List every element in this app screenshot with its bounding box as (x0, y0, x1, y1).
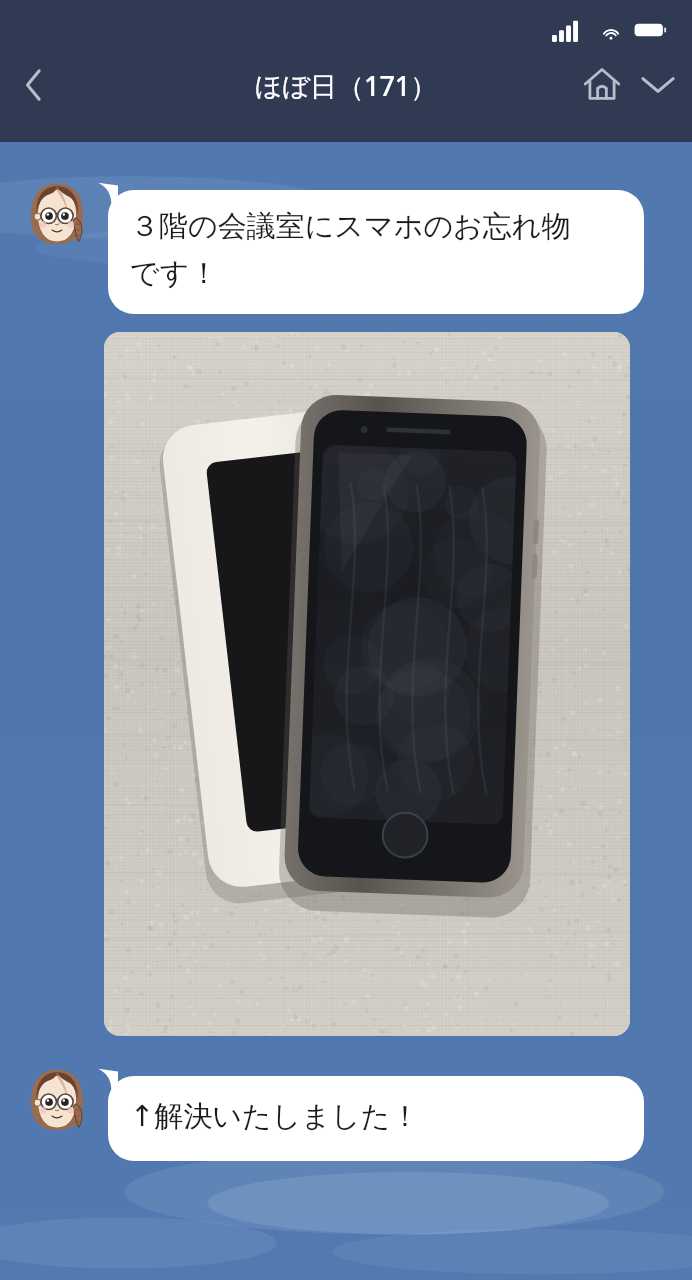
button[interactable]: Photo of two smartphones (104, 332, 630, 1036)
button[interactable]: ↑解決いたしました！ (96, 1068, 644, 1161)
button[interactable]: Back (0, 54, 62, 116)
staticText: ３階の会議室にスマホのお忘れ物 です！ (130, 208, 571, 292)
button[interactable]: Home (574, 57, 630, 113)
button[interactable]: Collapse (630, 57, 686, 113)
button[interactable]: Profile photo (26, 182, 88, 244)
button[interactable]: Profile photo (26, 1068, 88, 1130)
staticText: ほぼ日（171） (0, 67, 692, 104)
button[interactable]: ３階の会議室にスマホのお忘れ物 です！ (96, 182, 644, 314)
staticText: ↑解決いたしました！ (130, 1098, 420, 1135)
